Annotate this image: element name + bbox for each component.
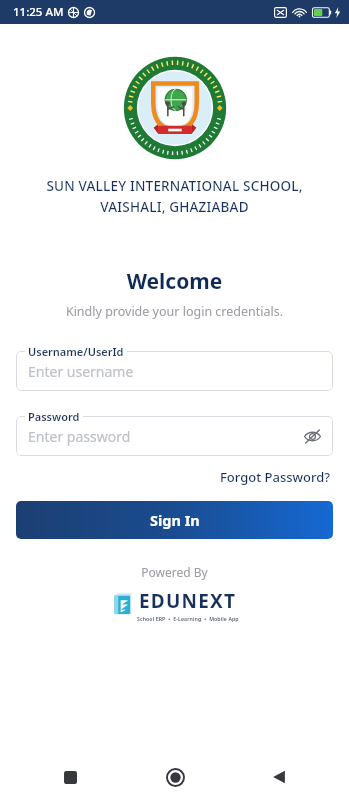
button[interactable]: Enter username <box>16 351 333 391</box>
staticText: EDUNEXT <box>139 588 237 614</box>
staticText: Kindly provide your login credentials. <box>0 303 349 320</box>
button[interactable]: Recent apps <box>52 759 88 795</box>
staticText: Enter password <box>28 427 131 446</box>
staticText: SUN VALLEY INTERNATIONAL SCHOOL, VAISHAL… <box>20 177 329 216</box>
button[interactable]: Forgot Password? <box>218 465 333 489</box>
staticText: Forgot Password? <box>220 468 331 486</box>
staticText: Password <box>28 409 80 424</box>
button[interactable]: Back <box>261 759 297 795</box>
button[interactable]: Home <box>157 759 193 795</box>
button[interactable]: Enter password <box>16 416 333 456</box>
button[interactable]: Show password <box>299 423 325 449</box>
staticText: Sign In <box>150 510 200 530</box>
staticText: Enter username <box>28 362 134 381</box>
staticText: School ERP • E-Learning • Mobile App <box>137 615 239 622</box>
staticText: Username/UserId <box>28 344 124 359</box>
staticText: 11:25 AM <box>13 4 64 20</box>
staticText: Powered By <box>0 564 349 580</box>
button[interactable]: Sign In <box>16 501 333 539</box>
staticText: Welcome <box>0 267 349 296</box>
